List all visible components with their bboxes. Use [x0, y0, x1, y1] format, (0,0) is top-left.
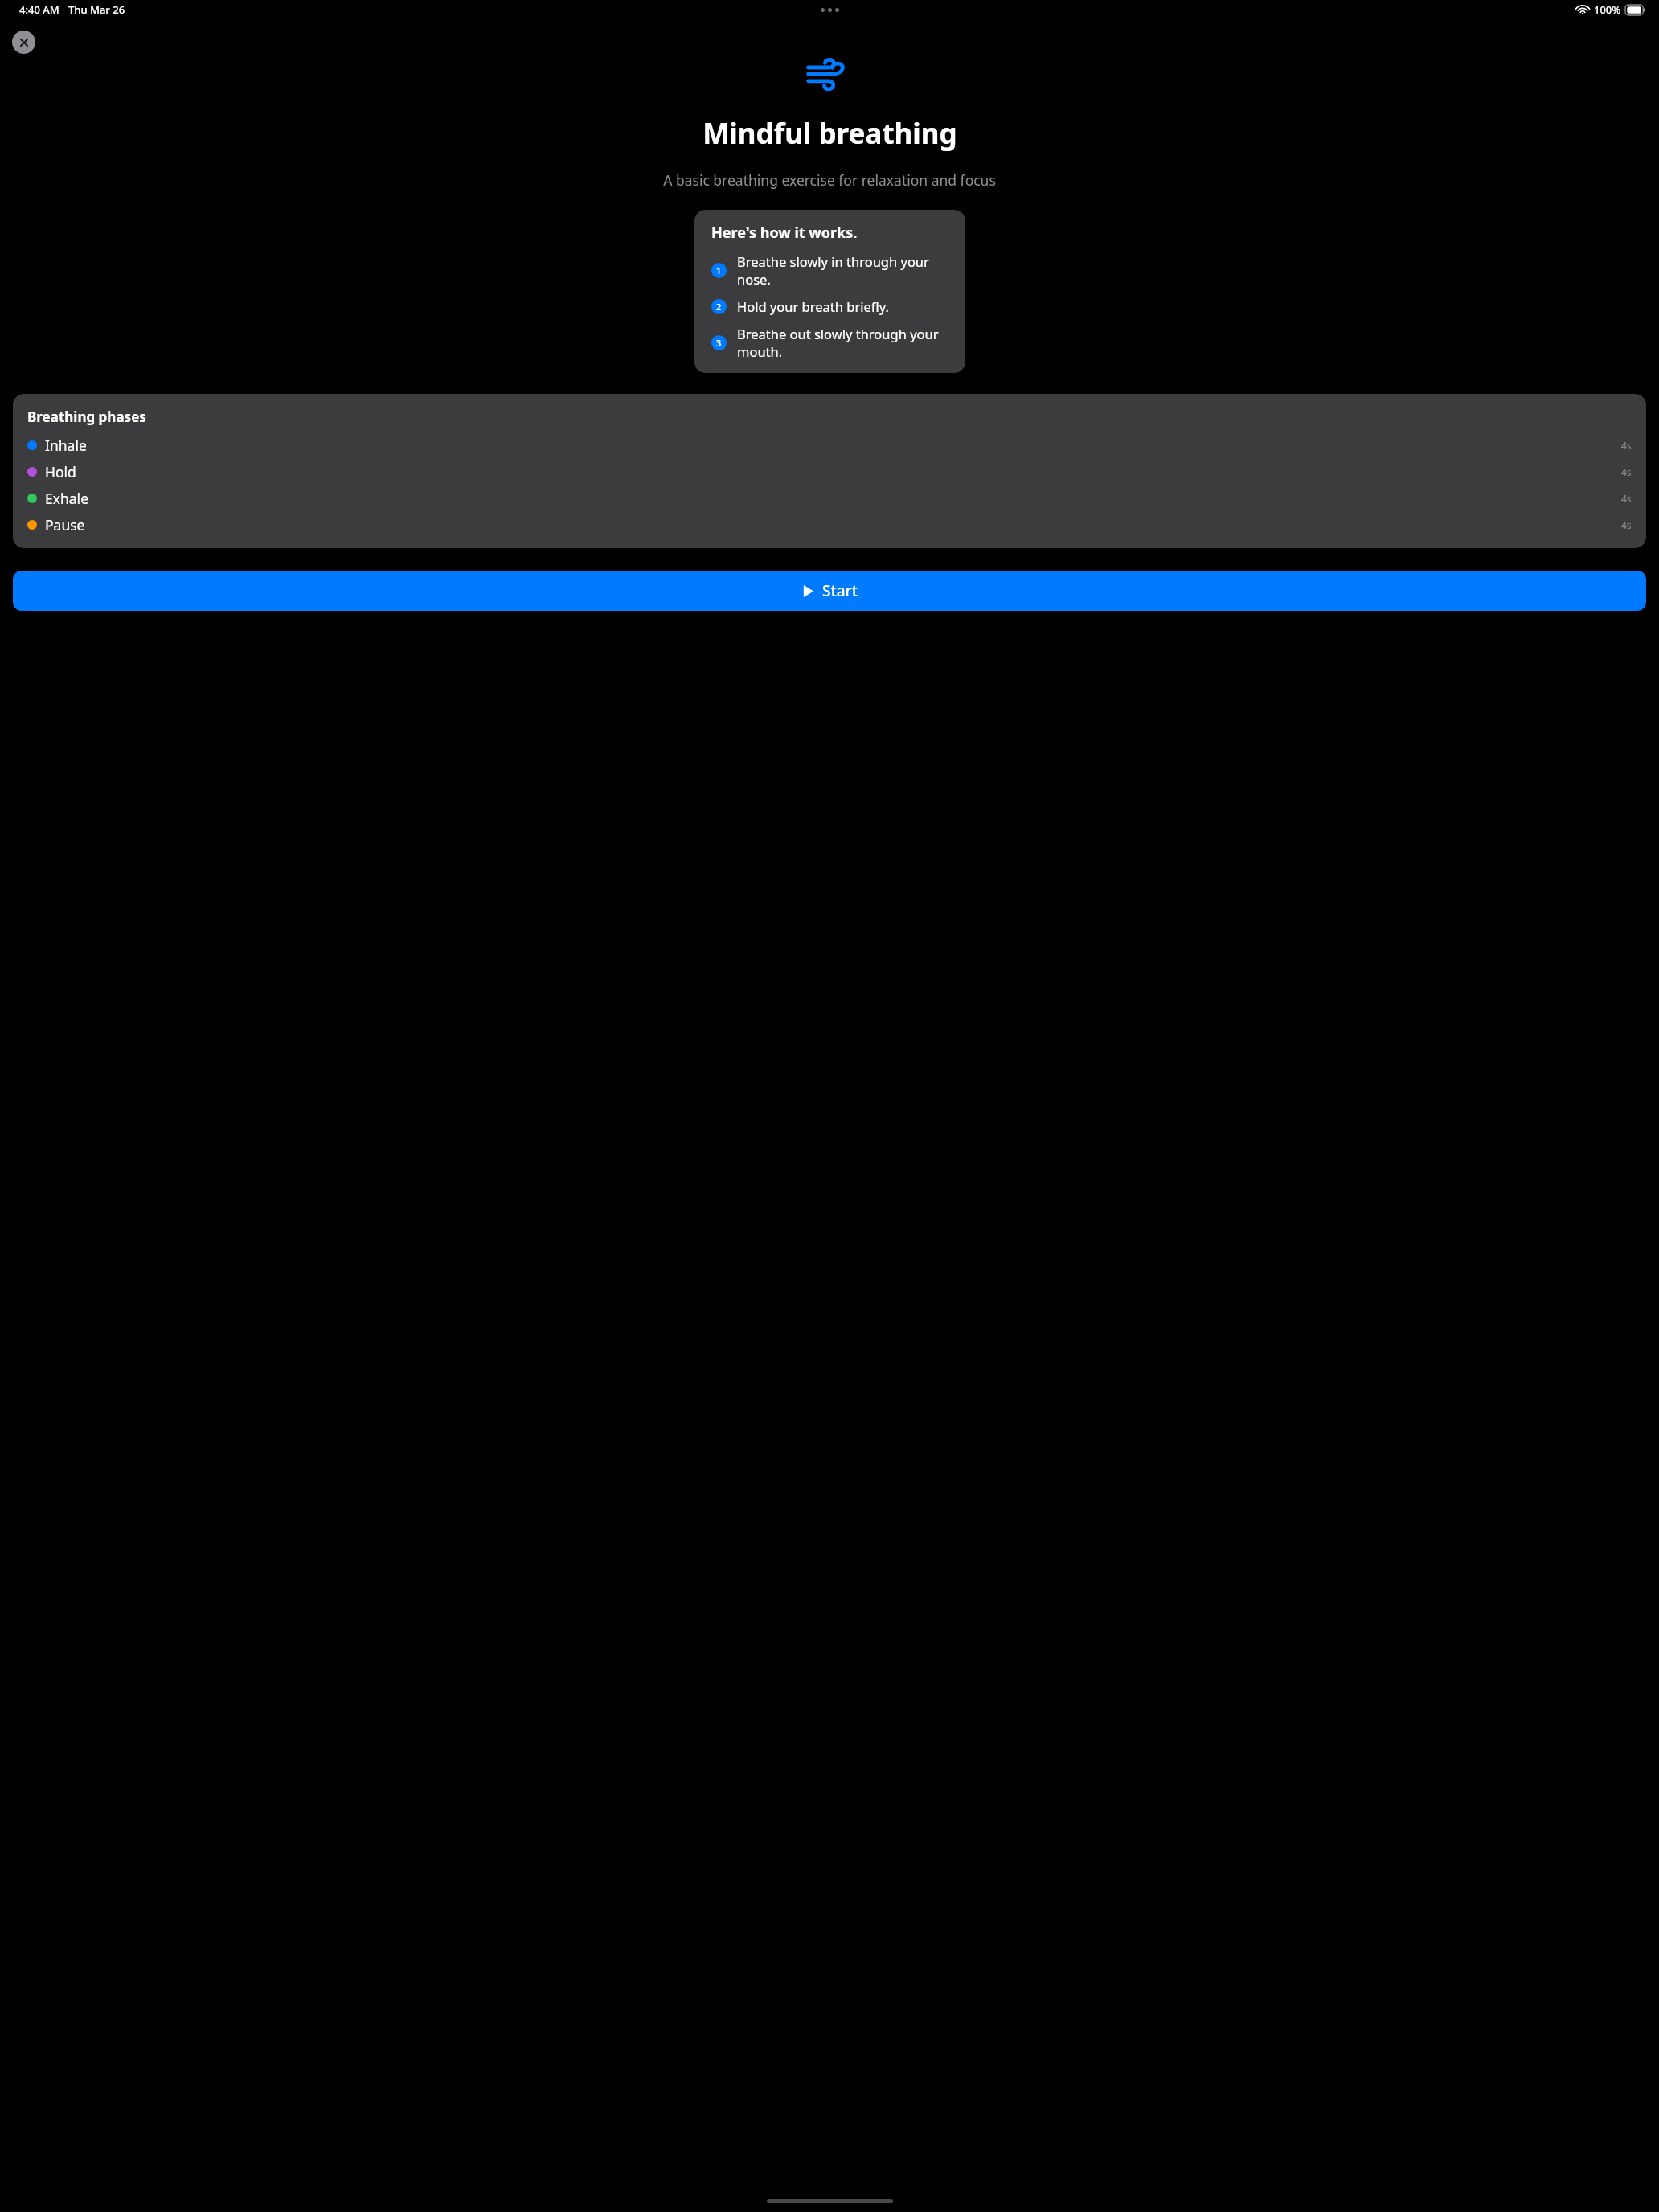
staticText: 4:40 AM [19, 2, 59, 17]
staticText: 4s [1621, 439, 1632, 452]
staticText: 1 [716, 264, 722, 276]
button[interactable]: Pause [27, 515, 1632, 535]
staticText: Breathe slowly in through your nose. [737, 252, 948, 288]
staticText: Here's how it works. [711, 223, 858, 243]
staticText: 3 [716, 337, 722, 349]
staticText: Breathe out slowly through your mouth. [737, 325, 948, 360]
button[interactable]: Inhale [27, 436, 1632, 455]
staticText: Hold [45, 462, 76, 481]
staticText: Breathing phases [27, 408, 146, 426]
staticText: 100% [1594, 2, 1621, 17]
staticText: Pause [45, 515, 85, 535]
button[interactable]: Hold [27, 462, 1632, 481]
staticText: 4s [1621, 492, 1632, 505]
button[interactable]: Close [12, 31, 35, 54]
staticText: Exhale [45, 489, 89, 508]
staticText: 2 [716, 301, 722, 313]
other: Wind [807, 58, 852, 90]
staticText: Inhale [45, 436, 87, 455]
staticText: 4s [1621, 465, 1632, 478]
button[interactable]: Start [13, 571, 1646, 611]
staticText: A basic breathing exercise for relaxatio… [663, 170, 996, 190]
button[interactable]: Exhale [27, 489, 1632, 508]
staticText: Hold your breath briefly. [737, 297, 889, 315]
staticText: 4s [1621, 518, 1632, 531]
staticText: Thu Mar 26 [68, 2, 125, 17]
staticText: Start [822, 580, 858, 601]
staticText: Mindful breathing [703, 114, 957, 153]
